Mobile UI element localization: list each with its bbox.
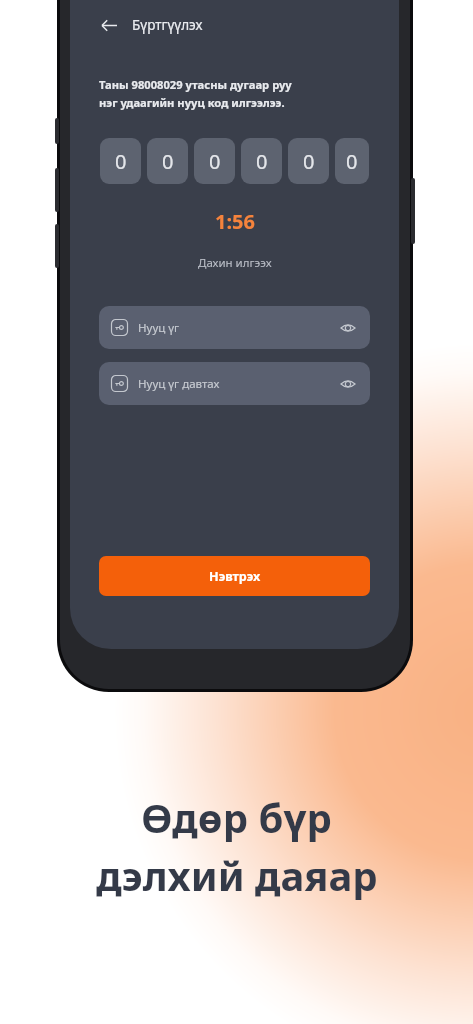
button[interactable]: Нууц үг	[99, 306, 370, 349]
button[interactable]: Back	[98, 14, 120, 36]
staticText: 0	[303, 148, 315, 175]
staticText: 0	[162, 148, 174, 175]
button[interactable]: Нууц үг давтах	[99, 362, 370, 405]
button[interactable]: 0	[194, 138, 235, 184]
button[interactable]: 0	[100, 138, 141, 184]
staticText: 0	[115, 148, 127, 175]
staticText: Таны 98008029 утасны дугаар руу	[99, 77, 292, 92]
staticText: дэлхий даяар	[96, 848, 378, 902]
staticText: нэг удаагийн нууц код илгээлээ.	[99, 95, 285, 110]
button[interactable]: Нэвтрэх	[99, 556, 370, 596]
staticText: 0	[346, 148, 358, 175]
button[interactable]: 0	[147, 138, 188, 184]
button[interactable]: Дахин илгээх	[188, 252, 282, 274]
staticText: Бүртгүүлэх	[132, 16, 203, 34]
staticText: Нэвтрэх	[209, 568, 261, 585]
button[interactable]: 0	[241, 138, 282, 184]
staticText: Нууц үг	[138, 320, 180, 336]
button[interactable]: Show password	[337, 373, 359, 395]
staticText: Дахин илгээх	[198, 255, 272, 271]
button[interactable]: 0	[288, 138, 329, 184]
staticText: Нууц үг давтах	[138, 376, 220, 392]
button[interactable]: Show password	[337, 317, 359, 339]
staticText: Өдөр бүр	[141, 790, 332, 844]
staticText: 0	[256, 148, 268, 175]
staticText: 1:56	[215, 208, 255, 235]
staticText: 0	[209, 148, 221, 175]
button[interactable]: 0	[335, 138, 369, 184]
